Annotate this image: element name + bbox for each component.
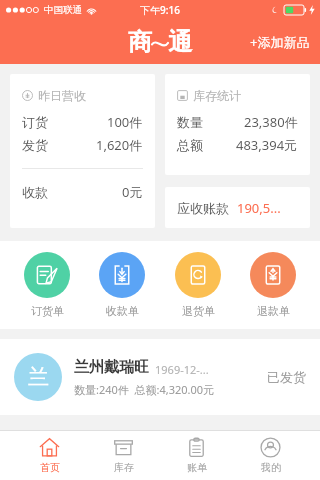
staticText: 下午9:16 xyxy=(140,3,180,17)
staticText: 昨日营收 xyxy=(38,88,86,103)
button[interactable]: 库存 xyxy=(99,431,148,480)
staticText: 数量 xyxy=(177,114,203,130)
staticText: 收款 xyxy=(22,184,48,200)
staticText: 数量:240件 总额:4,320.00元 xyxy=(74,382,215,397)
staticText: 收款单 xyxy=(106,304,139,318)
button[interactable]: 退款单 xyxy=(244,252,302,318)
staticText: 100件 xyxy=(107,113,143,131)
staticText: +添加新品 xyxy=(250,33,310,51)
staticText: 库存统计 xyxy=(193,88,241,103)
staticText: 483,394元 xyxy=(236,136,298,154)
staticText: 总额 xyxy=(177,137,203,153)
button[interactable]: +添加新品 xyxy=(240,25,320,59)
staticText: 23,380件 xyxy=(244,113,298,131)
staticText: 190,5... xyxy=(237,199,281,217)
button[interactable]: 库存统计 xyxy=(165,74,310,175)
staticText: 订货 xyxy=(22,114,48,130)
staticText: 通 xyxy=(168,27,192,57)
staticText: 0元 xyxy=(122,183,143,201)
staticText: 商 xyxy=(128,27,152,57)
staticText: 1,620件 xyxy=(96,136,143,154)
button[interactable]: 首页 xyxy=(25,431,74,480)
staticText: 兰州戴瑞旺 xyxy=(74,358,149,377)
button[interactable]: 订货单 xyxy=(18,252,76,318)
button[interactable]: 账单 xyxy=(172,431,221,480)
staticText: 库存 xyxy=(114,461,134,474)
staticText: 发货 xyxy=(22,137,48,153)
staticText: 账单 xyxy=(187,461,207,474)
staticText: 首页 xyxy=(40,461,60,474)
button[interactable]: 兰 xyxy=(0,339,320,415)
staticText: 1969-12-... xyxy=(155,362,209,377)
button[interactable]: 昨日营收 xyxy=(10,74,155,228)
staticText: 订货单 xyxy=(31,304,64,318)
staticText: 应收账款 xyxy=(177,200,229,216)
button[interactable]: 退货单 xyxy=(169,252,227,318)
button[interactable]: 我的 xyxy=(246,431,295,480)
button[interactable]: 应收账款 xyxy=(165,187,310,228)
button[interactable]: 收款单 xyxy=(93,252,151,318)
staticText: 已发货 xyxy=(267,369,306,385)
staticText: 退款单 xyxy=(257,304,290,318)
staticText: 退货单 xyxy=(182,304,215,318)
staticText: 兰 xyxy=(28,364,49,390)
staticText: 我的 xyxy=(261,461,281,474)
staticText: 中国联通 xyxy=(44,4,82,16)
